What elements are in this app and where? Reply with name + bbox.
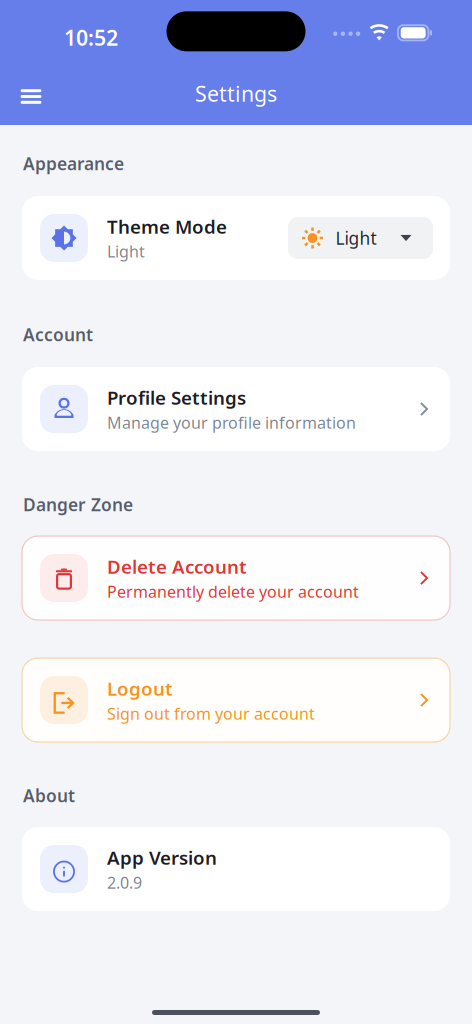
staticText: Account <box>23 323 93 346</box>
staticText: Manage your profile information <box>107 412 356 433</box>
staticText: Permanently delete your account <box>107 581 359 602</box>
button[interactable]: Menu <box>9 68 53 118</box>
staticText: Logout <box>107 676 173 701</box>
staticText: Appearance <box>23 152 124 175</box>
staticText: Delete Account <box>107 554 247 579</box>
staticText: 2.0.9 <box>107 872 142 893</box>
staticText: Light <box>335 226 376 249</box>
button[interactable]: Logout <box>0 658 472 742</box>
staticText: 10:52 <box>64 23 118 52</box>
staticText: About <box>23 784 75 807</box>
staticText: Danger Zone <box>23 493 133 516</box>
staticText: App Version <box>107 845 217 870</box>
staticText: Settings <box>195 79 277 108</box>
staticText: Profile Settings <box>107 385 246 410</box>
button[interactable]: Delete Account <box>0 536 472 620</box>
button[interactable]: App Version <box>0 827 472 911</box>
staticText: Theme Mode <box>107 214 227 239</box>
staticText: Sign out from your account <box>107 703 315 724</box>
staticText: Light <box>107 241 145 262</box>
button[interactable]: Profile Settings <box>0 367 472 451</box>
button[interactable]: Theme Mode <box>0 196 472 280</box>
